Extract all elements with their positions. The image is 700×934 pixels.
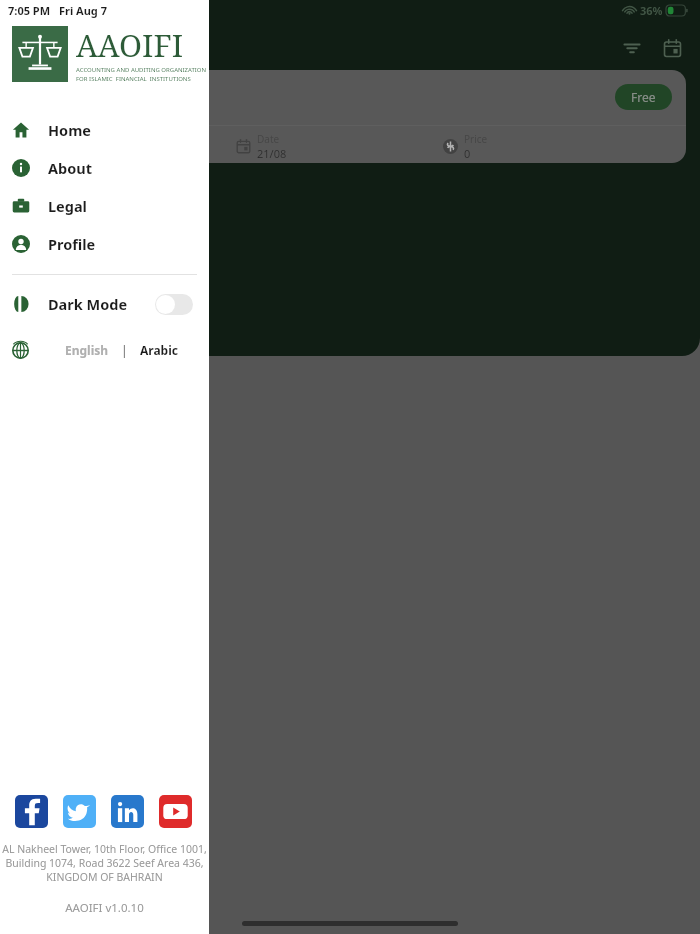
staticText: About	[48, 158, 92, 178]
staticText: Fri Aug 7	[59, 3, 107, 18]
button[interactable]: Facebook	[15, 795, 48, 828]
staticText: AAOIFI	[76, 24, 184, 66]
staticText: Date	[257, 132, 280, 146]
staticText: 36%	[640, 3, 663, 18]
button[interactable]: Free	[150, 70, 686, 163]
staticText: 21/08	[257, 146, 287, 161]
button[interactable]: Profile	[0, 225, 209, 263]
staticText: Price	[464, 132, 488, 146]
staticText: 7:05 PM	[8, 3, 51, 18]
staticText: Free	[631, 89, 656, 105]
staticText: ACCOUNTING AND AUDITING ORGANIZATION	[76, 66, 207, 74]
button[interactable]: About	[0, 149, 209, 187]
button[interactable]: Legal	[0, 187, 209, 225]
staticText: |	[121, 342, 128, 358]
staticText: FOR ISLAMIC FINANCIAL INSTITUTIONS	[76, 75, 191, 83]
button[interactable]: Filter	[612, 28, 652, 68]
staticText: KINGDOM OF BAHRAIN	[0, 870, 209, 884]
button[interactable]: Home	[0, 111, 209, 149]
staticText: AAOIFI v1.0.10	[0, 900, 209, 916]
staticText: AL Nakheel Tower, 10th Floor, Office 100…	[0, 842, 209, 856]
staticText: 0	[464, 146, 471, 161]
button[interactable]: Calendar	[652, 28, 692, 68]
button[interactable]: Twitter	[63, 795, 96, 828]
button[interactable]: Free	[615, 84, 672, 110]
button[interactable]: Arabic	[136, 340, 182, 360]
staticText: English	[65, 342, 109, 358]
staticText: Dark Mode	[48, 294, 128, 314]
staticText: Profile	[48, 234, 96, 254]
staticText: Home	[48, 120, 91, 140]
button[interactable]: Dark mode toggle	[155, 294, 193, 315]
staticText: Arabic	[140, 342, 178, 358]
staticText: Building 1074, Road 3622 Seef Area 436,	[0, 856, 209, 870]
button[interactable]: Dark Mode	[0, 285, 209, 323]
button[interactable]: LinkedIn	[111, 795, 144, 828]
staticText: Legal	[48, 196, 87, 216]
button[interactable]: English	[61, 340, 113, 360]
button[interactable]: YouTube	[159, 795, 192, 828]
